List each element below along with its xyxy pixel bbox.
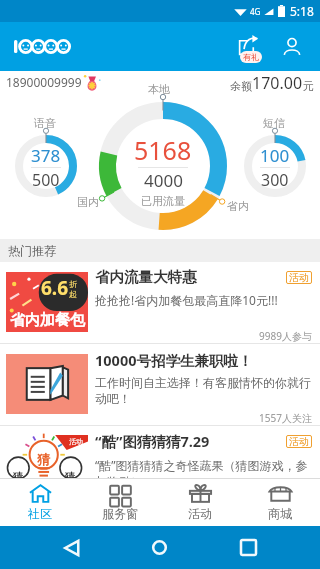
- staticText: 378: [31, 144, 61, 167]
- staticText: 5:18: [290, 3, 314, 19]
- staticText: 猜: [13, 470, 23, 483]
- staticText: 10000号招学生兼职啦！: [95, 350, 253, 370]
- staticText: “酷”图猜猜猜之奇怪蔬果（猜图游戏，参与奖励）: [95, 457, 312, 478]
- staticText: 活动: [289, 271, 309, 284]
- button[interactable]: 6.6: [0, 262, 320, 343]
- staticText: 商城: [268, 506, 292, 521]
- button[interactable]: 服务窗: [80, 479, 160, 526]
- staticText: 服务窗: [102, 506, 138, 521]
- staticText: 折: [69, 279, 77, 289]
- staticText: 500: [32, 169, 60, 191]
- staticText: 社区: [28, 506, 52, 521]
- staticText: 抢抢抢!省内加餐包最高直降10元!!!: [95, 292, 278, 308]
- staticText: “酷”图猜猜猜7.29: [95, 431, 286, 451]
- staticText: 活动: [69, 437, 83, 446]
- button[interactable]: Share and get gift: [228, 25, 268, 69]
- staticText: 4000: [144, 169, 183, 192]
- staticText: 有礼: [243, 52, 259, 62]
- button[interactable]: 10000号招学生兼职啦！: [0, 344, 320, 425]
- staticText: 猜: [37, 451, 50, 467]
- staticText: 工作时间自主选择！有客服情怀的你就行动吧！: [95, 375, 312, 407]
- staticText: 100: [260, 144, 290, 167]
- staticText: 活动: [188, 506, 212, 521]
- staticText: 9989人参与: [259, 329, 312, 343]
- button[interactable]: 社区: [0, 479, 80, 526]
- button[interactable]: 商城: [240, 479, 320, 526]
- staticText: 余额: [230, 79, 252, 93]
- button[interactable]: Back: [49, 526, 93, 569]
- button[interactable]: Home: [137, 526, 181, 569]
- staticText: 4G: [250, 6, 261, 17]
- staticText: 18900009999: [6, 74, 82, 90]
- staticText: 国内: [77, 195, 99, 209]
- button[interactable]: Recent apps: [226, 526, 270, 569]
- staticText: 省内流量大特惠: [95, 268, 286, 286]
- staticText: 省内: [227, 199, 249, 213]
- button[interactable]: 活动: [160, 479, 240, 526]
- staticText: 短信: [263, 116, 285, 130]
- button[interactable]: Profile: [272, 25, 312, 69]
- staticText: 语音: [34, 116, 56, 130]
- staticText: 6.6: [41, 275, 69, 301]
- staticText: 300: [261, 169, 289, 191]
- staticText: 省内加餐包: [10, 311, 85, 330]
- staticText: 活动: [289, 435, 309, 448]
- staticText: 已用流量: [141, 194, 185, 208]
- staticText: 5168: [134, 133, 192, 167]
- staticText: 本地: [148, 82, 170, 96]
- staticText: 热门推荐: [8, 243, 56, 258]
- staticText: 元: [303, 79, 314, 93]
- staticText: 起: [69, 289, 77, 299]
- button[interactable]: 猜: [0, 426, 320, 478]
- staticText: 170.00: [252, 72, 303, 94]
- staticText: 1557人关注: [259, 411, 312, 425]
- staticText: 猜: [65, 470, 75, 483]
